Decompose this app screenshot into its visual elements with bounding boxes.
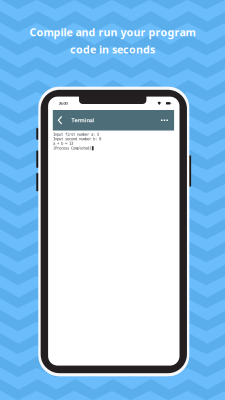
staticText: 06:00: [59, 101, 68, 106]
staticText: code in seconds: [70, 42, 155, 56]
staticText: Input second number b: 8: [53, 137, 101, 141]
staticText: [Process Completed]: [53, 146, 91, 150]
staticText: Terminal: [71, 117, 94, 124]
staticText: Input first number a: 5: [53, 132, 99, 137]
staticText: Compile and run your program: [29, 25, 195, 39]
button[interactable]: Terminal: [53, 116, 94, 124]
button[interactable]: More options: [161, 119, 174, 121]
staticText: a + b = 13: [53, 141, 73, 146]
